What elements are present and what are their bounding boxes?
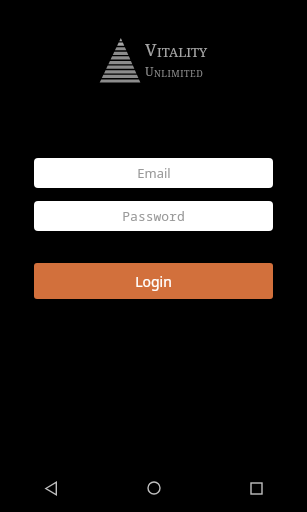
staticText: U — [145, 63, 154, 79]
staticText: Email — [137, 164, 171, 182]
staticText: V — [145, 38, 157, 61]
staticText: NLIMITED — [154, 67, 204, 79]
button[interactable]: Recent apps — [205, 464, 307, 512]
button[interactable]: Email — [34, 158, 273, 188]
staticText: Login — [135, 272, 172, 291]
staticText: Password — [122, 207, 185, 225]
button[interactable]: Login — [34, 263, 273, 299]
button[interactable]: Password — [34, 201, 273, 231]
staticText: ITALITY — [157, 43, 208, 61]
button[interactable]: Home — [103, 464, 205, 512]
button[interactable]: Back — [0, 464, 103, 512]
